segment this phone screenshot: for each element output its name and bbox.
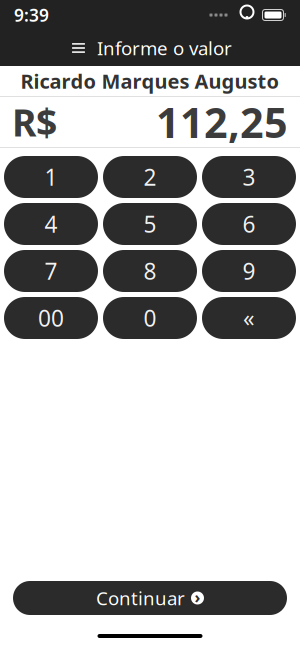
staticText: 2 <box>143 162 156 192</box>
staticText: « <box>243 303 255 333</box>
button[interactable]: 0 <box>103 297 197 339</box>
staticText: › <box>194 586 200 608</box>
staticText: 7 <box>44 256 57 286</box>
staticText: 8 <box>143 256 156 286</box>
button[interactable]: 00 <box>4 297 98 339</box>
button[interactable]: 9 <box>202 250 296 292</box>
button[interactable]: 8 <box>103 250 197 292</box>
button[interactable]: 6 <box>202 203 296 245</box>
staticText: 5 <box>143 209 156 239</box>
staticText: 112,25 <box>156 95 288 149</box>
staticText: 0 <box>143 303 156 333</box>
staticText: Informe o valor <box>97 36 232 60</box>
button[interactable]: 7 <box>4 250 98 292</box>
staticText: R$ <box>12 97 57 147</box>
staticText: 9:39 <box>14 3 49 26</box>
button[interactable]: 1 <box>4 156 98 198</box>
staticText: 6 <box>242 209 255 239</box>
button[interactable]: « <box>202 297 296 339</box>
staticText: Continuar <box>96 586 185 610</box>
staticText: 9 <box>242 256 255 286</box>
staticText: 1 <box>44 162 57 192</box>
button[interactable]: 4 <box>4 203 98 245</box>
button[interactable]: Continuar <box>13 581 287 615</box>
button[interactable]: 3 <box>202 156 296 198</box>
button[interactable]: Menu <box>68 36 89 60</box>
button[interactable]: 5 <box>103 203 197 245</box>
staticText: 4 <box>44 209 57 239</box>
staticText: Ricardo Marques Augusto <box>20 68 279 94</box>
staticText: 3 <box>242 162 255 192</box>
button[interactable]: 2 <box>103 156 197 198</box>
staticText: 00 <box>38 303 64 333</box>
